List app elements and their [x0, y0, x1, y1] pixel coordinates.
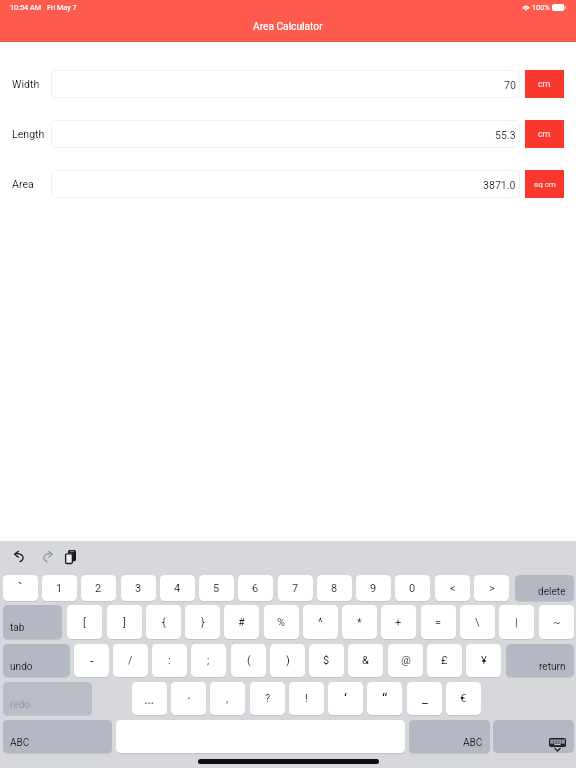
staticText: $: [323, 654, 330, 667]
staticText: Length: [12, 128, 45, 140]
button[interactable]: Undo: [14, 551, 25, 562]
button[interactable]: £: [427, 644, 462, 677]
button[interactable]: }: [185, 605, 220, 639]
staticText: £: [441, 654, 448, 667]
button[interactable]: 1: [42, 575, 77, 601]
staticText: redo: [10, 699, 31, 711]
button[interactable]: $: [309, 644, 344, 677]
button[interactable]: !: [289, 682, 324, 715]
staticText: 1: [56, 582, 63, 595]
button[interactable]: 3871.0: [51, 170, 520, 198]
staticText: ~: [553, 616, 561, 629]
button[interactable]: tab: [3, 605, 62, 639]
button[interactable]: -: [74, 644, 109, 677]
button[interactable]: €: [446, 682, 481, 715]
button[interactable]: 7: [278, 575, 313, 601]
button[interactable]: ): [270, 644, 305, 677]
staticText: ^: [318, 616, 323, 629]
staticText: sq cm: [534, 180, 556, 189]
staticText: <: [450, 582, 456, 595]
button[interactable]: (: [231, 644, 266, 677]
staticText: 100%: [532, 3, 550, 12]
button[interactable]: cm: [525, 120, 564, 148]
button[interactable]: cm: [525, 70, 564, 98]
button[interactable]: @: [388, 644, 423, 677]
button[interactable]: 55.3: [51, 120, 520, 148]
button[interactable]: >: [474, 575, 509, 601]
button[interactable]: :: [152, 644, 187, 677]
staticText: …: [144, 690, 155, 708]
staticText: “: [382, 690, 388, 708]
button[interactable]: ABC: [3, 720, 112, 753]
button[interactable]: ABC: [409, 720, 490, 753]
button[interactable]: undo: [3, 644, 70, 677]
staticText: 3: [135, 582, 142, 595]
button[interactable]: delete: [515, 575, 574, 601]
staticText: _: [422, 691, 428, 706]
button[interactable]: &: [348, 644, 383, 677]
button[interactable]: ;: [191, 644, 226, 677]
staticText: 55.3: [495, 129, 516, 141]
button[interactable]: %: [264, 605, 299, 639]
button[interactable]: ]: [107, 605, 142, 639]
button[interactable]: /: [113, 644, 148, 677]
button[interactable]: [: [67, 605, 102, 639]
staticText: -: [90, 653, 94, 668]
staticText: 0: [409, 582, 416, 595]
button[interactable]: +: [381, 605, 416, 639]
button[interactable]: 70: [51, 70, 520, 98]
staticText: return: [539, 661, 566, 673]
staticText: 7: [292, 582, 299, 595]
staticText: ‘: [344, 690, 348, 708]
button[interactable]: ?: [250, 682, 285, 715]
staticText: €: [460, 692, 467, 705]
staticText: 4: [174, 582, 181, 595]
button[interactable]: _: [407, 682, 442, 715]
button[interactable]: redo: [3, 682, 92, 715]
button[interactable]: 3: [121, 575, 156, 601]
button[interactable]: 4: [160, 575, 195, 601]
button[interactable]: *: [342, 605, 377, 639]
button[interactable]: ^: [303, 605, 338, 639]
button[interactable]: 5: [199, 575, 234, 601]
staticText: }: [201, 616, 205, 629]
button[interactable]: <: [435, 575, 470, 601]
button[interactable]: ·: [171, 682, 206, 715]
staticText: +: [395, 616, 402, 629]
button[interactable]: =: [421, 605, 456, 639]
button[interactable]: 2: [81, 575, 116, 601]
button[interactable]: |: [499, 605, 534, 639]
staticText: !: [305, 692, 308, 705]
staticText: delete: [538, 586, 566, 598]
staticText: undo: [10, 661, 33, 673]
button[interactable]: “: [367, 682, 402, 715]
button[interactable]: ,: [210, 682, 245, 715]
button[interactable]: sq cm: [525, 170, 564, 198]
button[interactable]: ‘: [328, 682, 363, 715]
button[interactable]: ~: [539, 605, 574, 639]
button[interactable]: ¥: [466, 644, 501, 677]
staticText: ]: [123, 616, 126, 629]
staticText: `: [18, 579, 23, 597]
staticText: 9: [370, 582, 377, 595]
button[interactable]: 9: [356, 575, 391, 601]
button[interactable]: return: [506, 644, 574, 677]
button[interactable]: 0: [395, 575, 430, 601]
button[interactable]: 8: [317, 575, 352, 601]
button[interactable]: 6: [238, 575, 273, 601]
button[interactable]: \: [460, 605, 495, 639]
button[interactable]: {: [146, 605, 181, 639]
staticText: 3871.0: [483, 179, 516, 191]
staticText: *: [357, 616, 362, 629]
button[interactable]: #: [224, 605, 259, 639]
button[interactable]: Redo: [42, 551, 53, 562]
staticText: 70: [504, 79, 516, 91]
button[interactable]: `: [3, 575, 38, 601]
button[interactable]: Hide keyboard: [493, 720, 574, 753]
staticText: Area: [12, 178, 34, 190]
button[interactable]: Paste: [65, 550, 76, 564]
staticText: #: [238, 616, 245, 629]
staticText: 2: [95, 582, 102, 595]
button[interactable]: …: [132, 682, 167, 715]
